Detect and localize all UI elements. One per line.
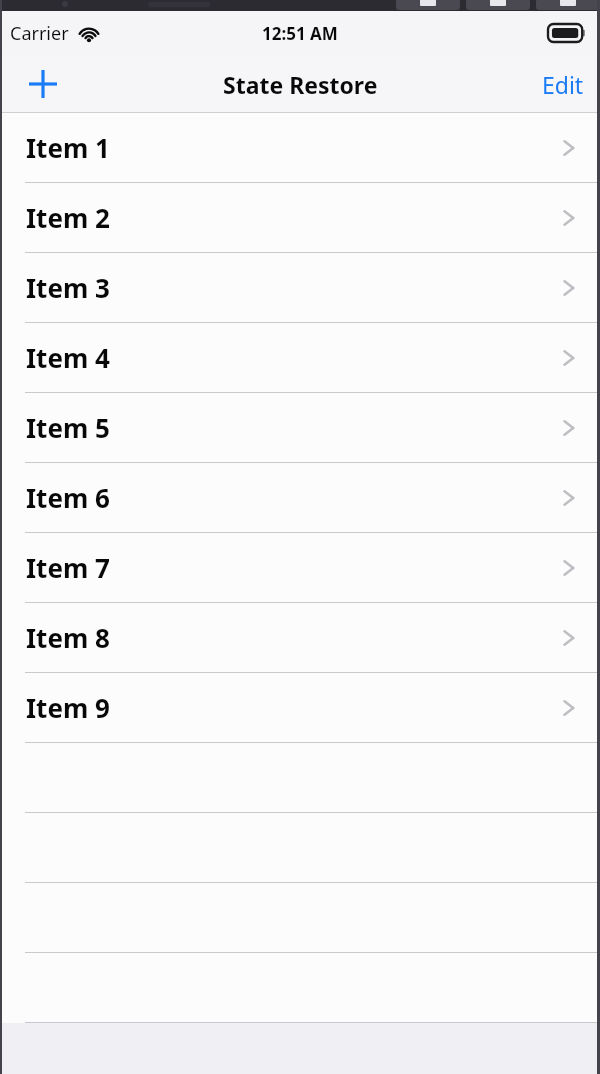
staticText: 12:51 AM bbox=[262, 22, 338, 45]
button[interactable]: Edit bbox=[542, 69, 584, 100]
staticText: Item 7 bbox=[26, 550, 110, 585]
button[interactable]: Add item bbox=[18, 59, 68, 109]
staticText: Item 6 bbox=[26, 480, 110, 515]
staticText: Carrier bbox=[10, 21, 69, 46]
button[interactable]: Item 1 bbox=[0, 113, 600, 183]
staticText: Item 1 bbox=[26, 130, 110, 165]
button[interactable] bbox=[466, 0, 530, 10]
button[interactable]: Item 7 bbox=[0, 533, 600, 603]
staticText: Item 3 bbox=[26, 270, 110, 305]
button[interactable]: Item 9 bbox=[0, 673, 600, 743]
button[interactable]: Item 5 bbox=[0, 393, 600, 463]
button[interactable]: Item 2 bbox=[0, 183, 600, 253]
staticText: Item 9 bbox=[26, 690, 110, 725]
staticText: Item 8 bbox=[26, 620, 110, 655]
button[interactable]: Item 8 bbox=[0, 603, 600, 673]
button[interactable]: Item 6 bbox=[0, 463, 600, 533]
staticText: Item 2 bbox=[26, 200, 110, 235]
button[interactable]: Item 4 bbox=[0, 323, 600, 393]
button[interactable]: Item 3 bbox=[0, 253, 600, 323]
staticText: Item 4 bbox=[26, 340, 110, 375]
staticText: Item 5 bbox=[26, 410, 110, 445]
staticText: Edit bbox=[542, 69, 584, 100]
button[interactable] bbox=[396, 0, 460, 10]
staticText: State Restore bbox=[223, 69, 378, 100]
button[interactable] bbox=[536, 0, 600, 10]
